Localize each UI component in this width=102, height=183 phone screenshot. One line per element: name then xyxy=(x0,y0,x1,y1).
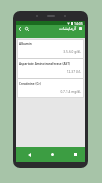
button[interactable]: Search xyxy=(23,25,30,32)
button[interactable]: Albumin xyxy=(17,39,84,58)
staticText: Albumin xyxy=(19,42,32,46)
button[interactable]: Back xyxy=(25,150,34,159)
button[interactable]: Profile xyxy=(78,26,83,31)
staticText: آزمایشات xyxy=(59,26,76,31)
button[interactable]: Recents xyxy=(71,150,80,159)
staticText: 12-37 U/L xyxy=(19,70,81,74)
button[interactable]: Back xyxy=(16,25,23,32)
staticText: Creatinine (Cr) xyxy=(19,82,41,86)
staticText: 14:05 xyxy=(74,21,83,25)
button[interactable]: Aspartate Aminotransferase (AST) xyxy=(17,59,84,78)
staticText: 3.5-6.0 g/dL xyxy=(19,50,81,54)
staticText: 0.7-1.4 mg/dL xyxy=(19,90,81,94)
button[interactable]: Home xyxy=(48,150,57,159)
staticText: Aspartate Aminotransferase (AST) xyxy=(19,62,71,66)
button[interactable]: Creatinine (Cr) xyxy=(17,79,84,98)
